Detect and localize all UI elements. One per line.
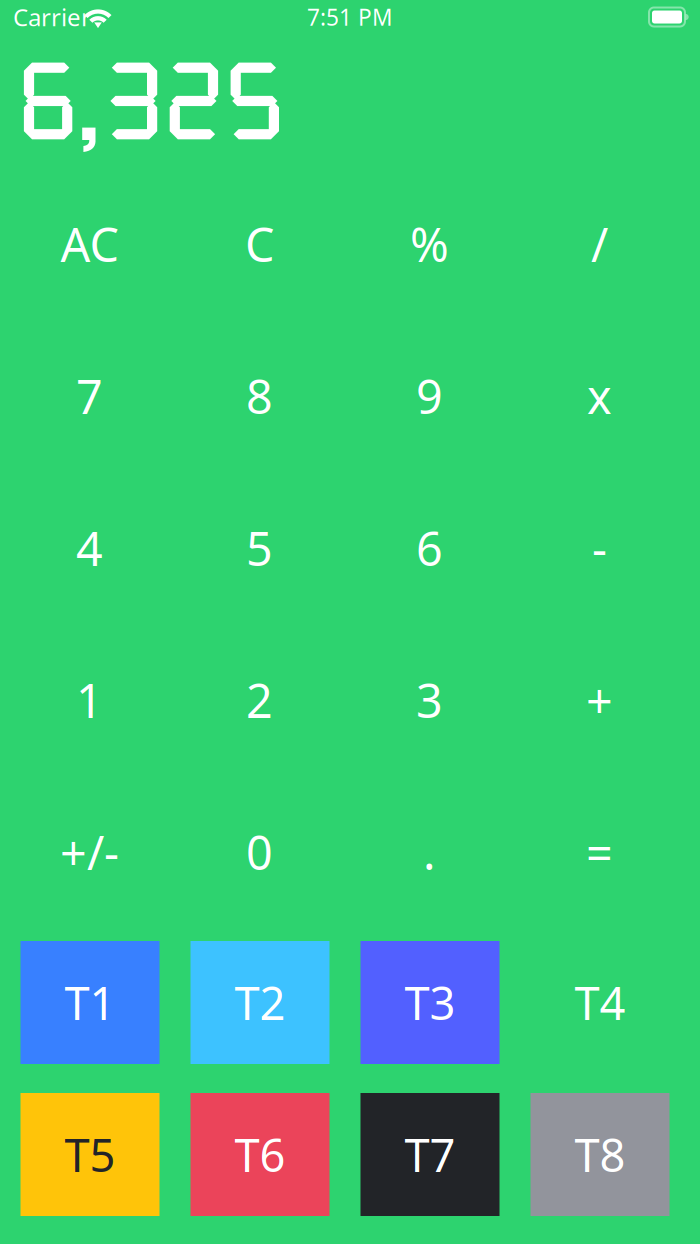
staticText: /	[591, 213, 608, 275]
staticText: +/-	[60, 821, 119, 883]
staticText: -	[592, 517, 607, 579]
staticText: T2	[234, 972, 285, 1033]
button[interactable]: T4	[530, 941, 700, 1064]
button[interactable]: T6	[190, 1093, 360, 1216]
staticText: 1	[76, 669, 103, 731]
button[interactable]: 4	[20, 472, 190, 624]
button[interactable]: T3	[360, 941, 530, 1064]
button[interactable]: 0	[190, 776, 360, 928]
button[interactable]: /	[530, 168, 700, 320]
button[interactable]: %	[360, 168, 530, 320]
staticText: T7	[404, 1124, 455, 1185]
staticText: T4	[574, 972, 625, 1033]
staticText: 9	[416, 365, 443, 427]
button[interactable]: T8	[530, 1093, 700, 1216]
staticText: 2	[246, 669, 273, 731]
button[interactable]: C	[190, 168, 360, 320]
staticText: 0	[246, 821, 273, 883]
staticText: T1	[64, 972, 115, 1033]
staticText: T8	[574, 1124, 625, 1185]
button[interactable]: 2	[190, 624, 360, 776]
staticText: 8	[246, 365, 273, 427]
staticText: =	[586, 821, 613, 883]
button[interactable]: x	[530, 320, 700, 472]
button[interactable]: .	[360, 776, 530, 928]
staticText: 7:51 PM	[307, 2, 393, 32]
button[interactable]: T2	[190, 941, 360, 1064]
staticText: x	[587, 365, 612, 427]
button[interactable]: -	[530, 472, 700, 624]
button[interactable]: 1	[20, 624, 190, 776]
staticText: .	[423, 821, 436, 883]
button[interactable]: 6	[360, 472, 530, 624]
staticText: Carrier	[13, 1, 91, 33]
staticText: T5	[64, 1124, 115, 1185]
button[interactable]: 3	[360, 624, 530, 776]
staticText: 7	[76, 365, 103, 427]
button[interactable]: =	[530, 776, 700, 928]
button[interactable]: T5	[20, 1093, 190, 1216]
staticText: T6	[234, 1124, 285, 1185]
staticText: 6	[416, 517, 443, 579]
staticText: %	[410, 213, 449, 275]
staticText: 5	[246, 517, 273, 579]
staticText: 3	[416, 669, 443, 731]
button[interactable]: +	[530, 624, 700, 776]
button[interactable]: 7	[20, 320, 190, 472]
button[interactable]: AC	[20, 168, 190, 320]
staticText: C	[245, 213, 274, 275]
button[interactable]: +/-	[20, 776, 190, 928]
staticText: AC	[60, 213, 118, 275]
staticText: 4	[76, 517, 103, 579]
button[interactable]: 5	[190, 472, 360, 624]
staticText: +	[586, 669, 613, 731]
button[interactable]: T7	[360, 1093, 530, 1216]
button[interactable]: T1	[20, 941, 190, 1064]
button[interactable]: 9	[360, 320, 530, 472]
staticText: T3	[404, 972, 455, 1033]
button[interactable]: 8	[190, 320, 360, 472]
